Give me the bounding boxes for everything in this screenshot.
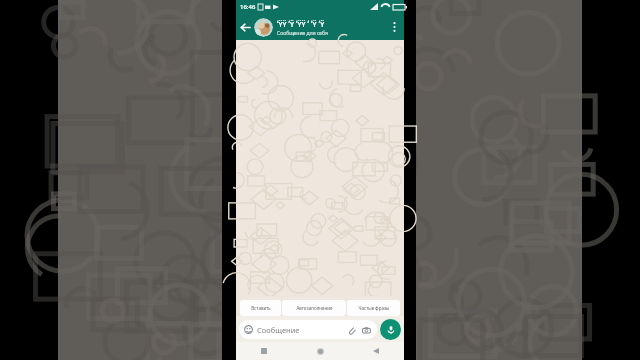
button[interactable]: Camera — [360, 324, 372, 336]
button[interactable]: Record voice message — [380, 319, 401, 340]
button[interactable]: Home — [292, 342, 348, 360]
staticText: Частые фразы — [358, 305, 390, 311]
button[interactable]: Вставить — [240, 300, 281, 316]
staticText: 16:46 — [240, 3, 256, 11]
staticText: Вставить — [251, 305, 271, 311]
button[interactable]: Автозаполнение — [282, 300, 346, 316]
button[interactable]: Profile photo — [254, 18, 273, 37]
button[interactable]: Emoji — [239, 320, 377, 339]
button[interactable]: Attach — [345, 324, 357, 336]
staticText: Сообщение для себя — [277, 30, 328, 37]
button[interactable]: Recent apps — [236, 342, 292, 360]
staticText: Автозаполнение — [296, 305, 333, 311]
staticText: Сообщение — [257, 325, 300, 335]
button[interactable]: More options — [386, 14, 402, 40]
button[interactable]: Back — [236, 14, 254, 40]
staticText: ʼʏ̈ʏ̈ ʼʏ̈ ʼʏ̈ʏ̈ ʼ ʼʏ̈ ʼʏ̈ — [277, 18, 325, 29]
button[interactable]: Back — [348, 342, 404, 360]
button[interactable]: Частые фразы — [347, 300, 400, 316]
button[interactable]: Emoji — [243, 324, 254, 335]
button[interactable]: ʼʏ̈ʏ̈ ʼʏ̈ ʼʏ̈ʏ̈ ʼ ʼʏ̈ ʼʏ̈ — [277, 14, 386, 40]
